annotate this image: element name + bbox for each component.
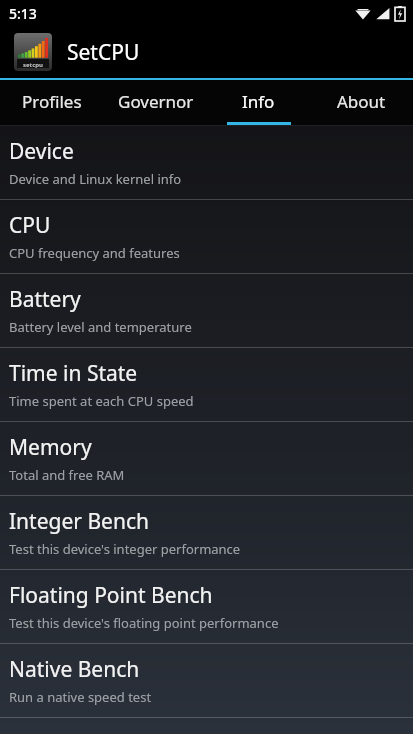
staticText: Test this device's floating point perfor… — [9, 614, 279, 632]
button[interactable]: Profiles — [0, 80, 104, 126]
staticText: Battery level and temperature — [9, 318, 192, 336]
button[interactable]: About — [310, 80, 413, 126]
staticText: Native Bench — [9, 655, 140, 684]
staticText: Device — [9, 137, 74, 166]
button[interactable]: Device — [0, 126, 413, 199]
staticText: Battery — [9, 285, 81, 314]
staticText: Governor — [118, 90, 194, 113]
button[interactable]: Native Bench — [0, 644, 413, 717]
staticText: CPU frequency and features — [9, 244, 180, 262]
staticText: CPU — [9, 211, 51, 240]
staticText: 5:13 — [9, 4, 37, 23]
staticText: Memory — [9, 433, 92, 462]
staticText: Integer Bench — [9, 507, 149, 536]
button[interactable]: Integer Bench — [0, 496, 413, 569]
staticText: Test this device's integer performance — [9, 540, 241, 558]
staticText: SetCPU — [67, 38, 140, 67]
staticText: Info — [242, 90, 275, 113]
staticText: Profiles — [22, 90, 82, 113]
button[interactable]: Floating Point Bench — [0, 570, 413, 643]
staticText: Time spent at each CPU speed — [9, 392, 194, 410]
staticText: Total and free RAM — [9, 466, 125, 484]
button[interactable]: Time in State — [0, 348, 413, 421]
staticText: About — [337, 90, 386, 113]
button[interactable]: CPU — [0, 200, 413, 273]
button[interactable]: Memory — [0, 422, 413, 495]
button[interactable]: Info — [207, 80, 310, 126]
staticText: Run a native speed test — [9, 688, 152, 706]
staticText: Device and Linux kernel info — [9, 170, 182, 188]
staticText: Time in State — [9, 359, 138, 388]
staticText: Floating Point Bench — [9, 581, 213, 610]
button[interactable]: Governor — [104, 80, 207, 126]
button[interactable]: Battery — [0, 274, 413, 347]
staticText: setcpu — [23, 61, 43, 69]
